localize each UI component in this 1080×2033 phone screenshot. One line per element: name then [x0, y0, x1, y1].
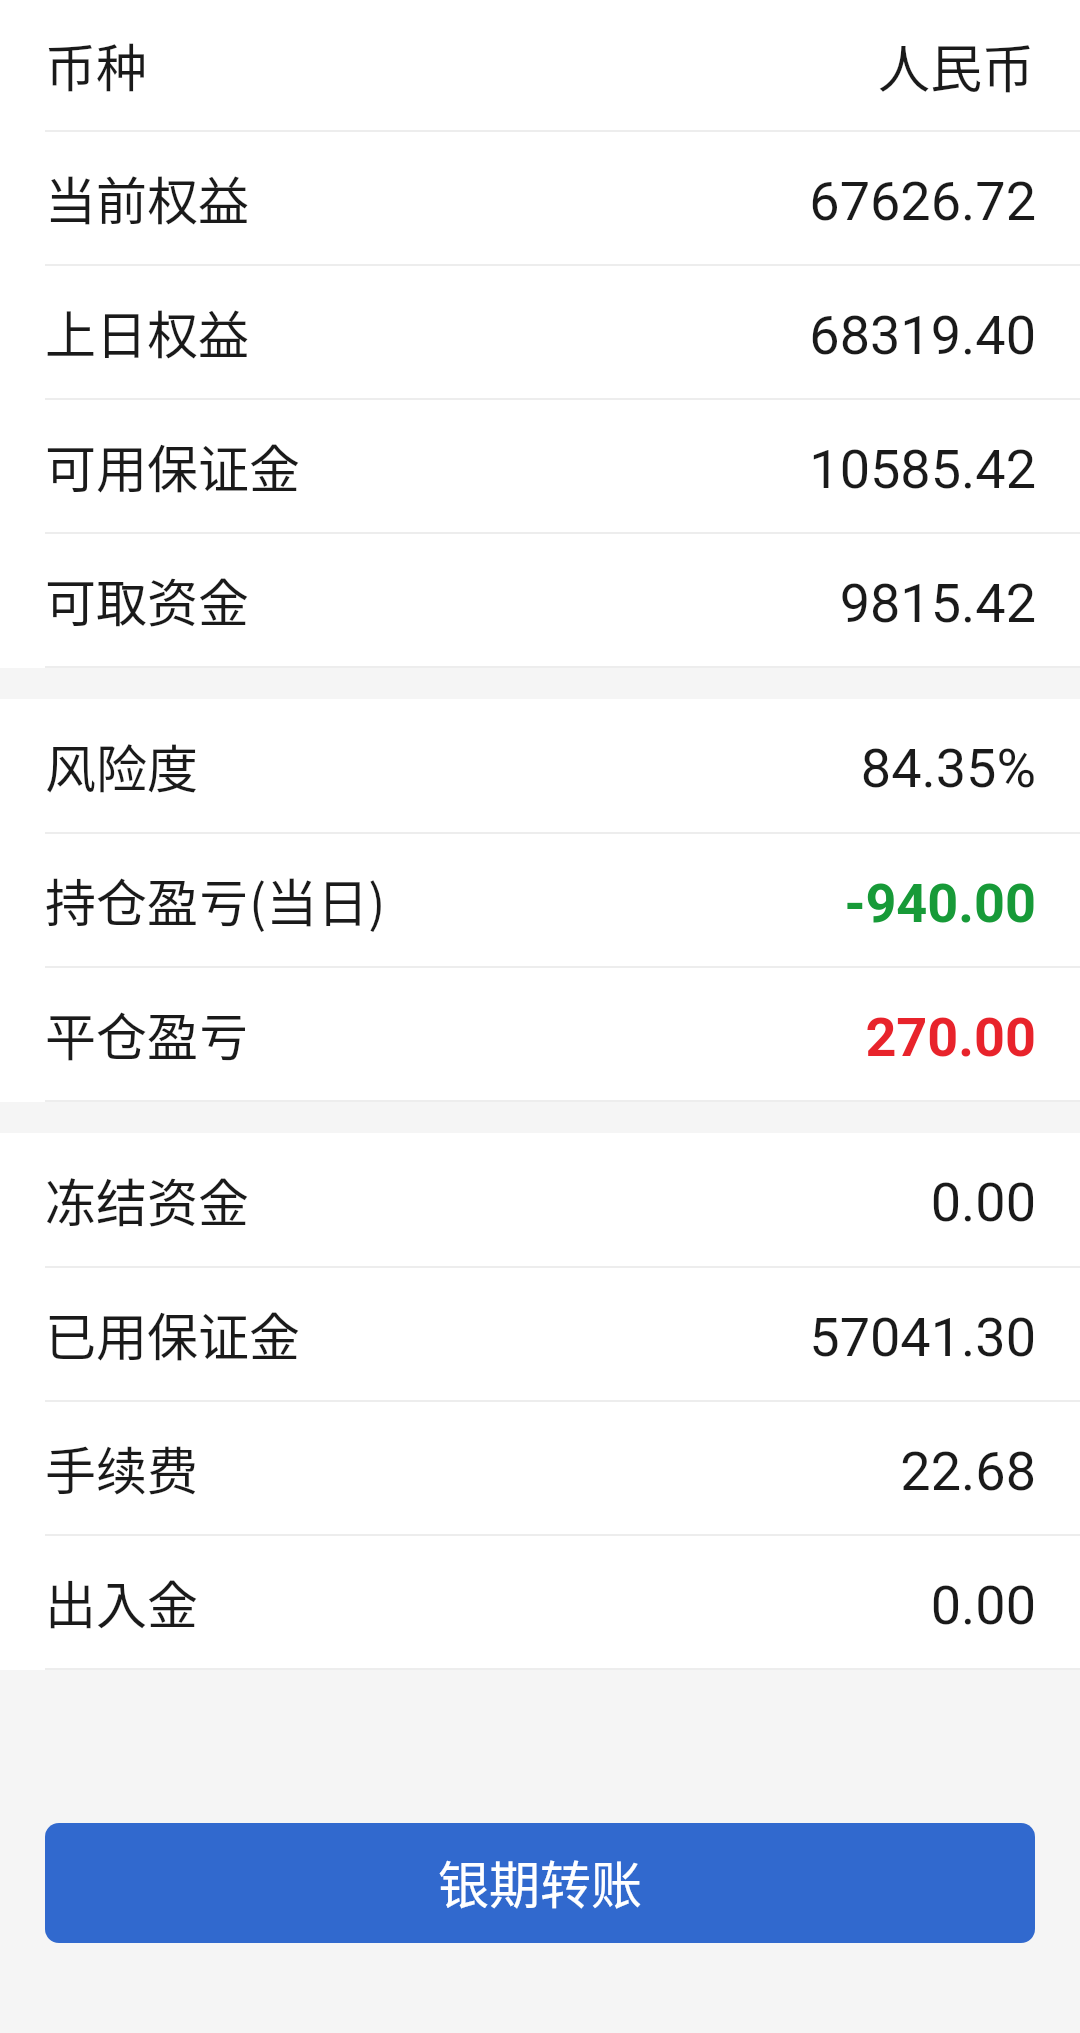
button[interactable]: 平仓盈亏 [0, 968, 1080, 1102]
staticText: 冻结资金 [45, 1163, 250, 1237]
button[interactable]: 币种 [0, 0, 1080, 132]
staticText: 币种 [45, 28, 148, 102]
staticText: 可用保证金 [45, 429, 301, 503]
staticText: 银期转账 [438, 1845, 643, 1919]
button[interactable]: 冻结资金 [0, 1133, 1080, 1268]
staticText: 67626.72 [809, 170, 1036, 233]
button[interactable]: 已用保证金 [0, 1268, 1080, 1402]
button[interactable]: 手续费 [0, 1402, 1080, 1536]
button[interactable]: 银期转账 [45, 1823, 1035, 1943]
staticText: 当前权益 [45, 161, 250, 235]
staticText: 平仓盈亏 [45, 997, 250, 1071]
button[interactable]: 可取资金 [0, 534, 1080, 668]
staticText: 10585.42 [809, 438, 1036, 501]
button[interactable]: 风险度 [0, 699, 1080, 834]
button[interactable]: 出入金 [0, 1536, 1080, 1670]
button[interactable]: 当前权益 [0, 132, 1080, 266]
staticText: 可取资金 [45, 563, 250, 637]
button[interactable]: 上日权益 [0, 266, 1080, 400]
button[interactable]: 持仓盈亏(当日) [0, 834, 1080, 968]
staticText: 68319.40 [809, 304, 1036, 367]
staticText: 已用保证金 [45, 1297, 301, 1371]
button[interactable]: 可用保证金 [0, 400, 1080, 534]
staticText: -940.00 [844, 872, 1036, 935]
staticText: 22.68 [900, 1440, 1036, 1503]
staticText: 手续费 [45, 1431, 199, 1505]
staticText: 9815.42 [839, 572, 1036, 635]
staticText: 持仓盈亏(当日) [45, 863, 386, 937]
staticText: 风险度 [45, 729, 199, 803]
staticText: 57041.30 [809, 1306, 1036, 1369]
staticText: 人民币 [877, 28, 1034, 103]
staticText: 84.35% [860, 737, 1036, 800]
staticText: 上日权益 [45, 295, 250, 369]
staticText: 270.00 [865, 1006, 1036, 1069]
staticText: 0.00 [930, 1574, 1036, 1637]
staticText: 出入金 [45, 1565, 199, 1639]
staticText: 0.00 [930, 1171, 1036, 1234]
